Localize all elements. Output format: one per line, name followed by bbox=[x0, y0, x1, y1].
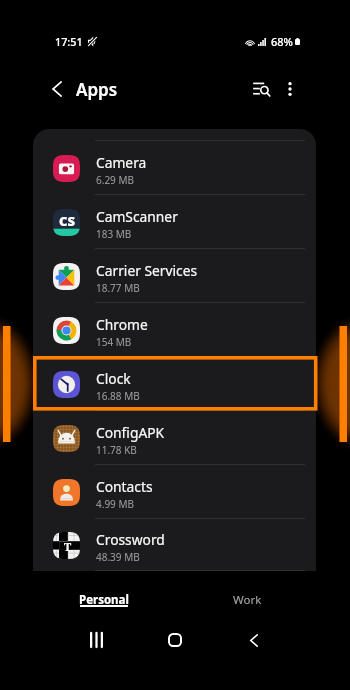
button[interactable]: More options bbox=[276, 75, 304, 103]
button[interactable]: Recent apps bbox=[66, 610, 126, 670]
staticText: 48.39 MB bbox=[96, 550, 140, 564]
button[interactable]: Search bbox=[249, 75, 277, 103]
staticText: 11.78 KB bbox=[96, 443, 137, 457]
staticText: T bbox=[64, 539, 72, 554]
staticText: 18.77 MB bbox=[96, 281, 140, 295]
staticText: 16.88 MB bbox=[96, 389, 140, 403]
button[interactable]: Contacts bbox=[33, 465, 316, 519]
staticText: 17:51 bbox=[55, 34, 83, 49]
button[interactable]: Home bbox=[145, 610, 205, 670]
staticText: ConfigAPK bbox=[96, 423, 165, 442]
button[interactable]: CS bbox=[33, 195, 316, 249]
button[interactable]: Camera bbox=[33, 141, 316, 195]
staticText: Work bbox=[233, 592, 262, 608]
button[interactable]: Carrier Services bbox=[33, 249, 316, 303]
button[interactable]: Clock bbox=[33, 357, 316, 411]
staticText: Carrier Services bbox=[96, 261, 198, 280]
staticText: Camera bbox=[96, 153, 147, 172]
staticText: Personal bbox=[79, 592, 129, 608]
button[interactable]: Personal bbox=[56, 592, 152, 622]
staticText: CS bbox=[59, 212, 75, 230]
staticText: 68% bbox=[271, 34, 293, 49]
staticText: Chrome bbox=[96, 315, 148, 334]
staticText: 6.29 MB bbox=[96, 173, 135, 187]
button[interactable]: ConfigAPK bbox=[33, 411, 316, 465]
button[interactable]: T bbox=[33, 519, 316, 571]
staticText: 4.99 MB bbox=[96, 497, 135, 511]
button[interactable]: Work bbox=[208, 592, 286, 622]
button[interactable]: Navigate up bbox=[43, 75, 71, 103]
staticText: 183 MB bbox=[96, 227, 132, 241]
staticText: Apps bbox=[76, 78, 118, 101]
button[interactable]: Chrome bbox=[33, 303, 316, 357]
staticText: 154 MB bbox=[96, 335, 132, 349]
staticText: Crossword bbox=[96, 530, 165, 549]
staticText: Contacts bbox=[96, 477, 153, 496]
staticText: Clock bbox=[96, 369, 131, 388]
button[interactable]: Back bbox=[224, 610, 284, 670]
staticText: CamScanner bbox=[96, 207, 178, 226]
